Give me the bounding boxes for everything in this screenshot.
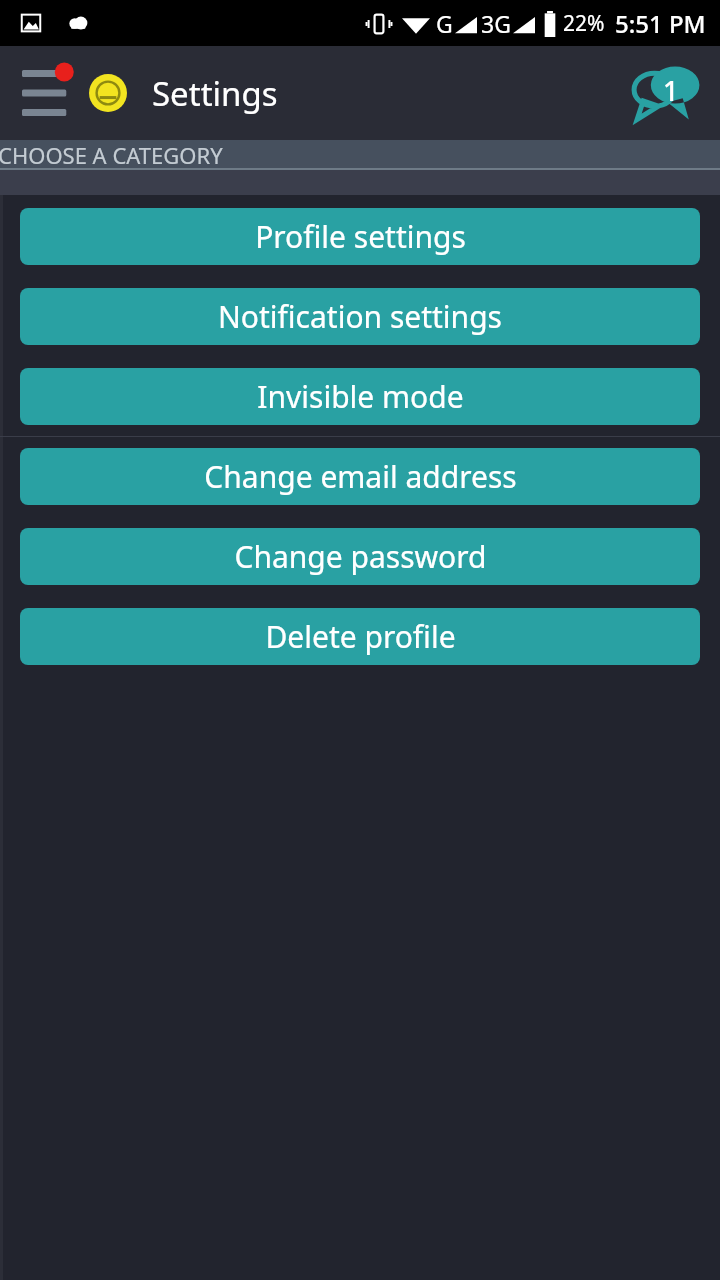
staticText: Settings (152, 71, 278, 116)
staticText: Delete profile (265, 616, 456, 657)
staticText: Notification settings (218, 296, 502, 337)
staticText: 5:51 PM (615, 7, 706, 40)
staticText: CHOOSE A CATEGORY (0, 140, 223, 168)
staticText: Change password (234, 536, 487, 577)
staticText: Change email address (204, 456, 517, 497)
button[interactable]: Invisible mode (20, 368, 700, 425)
staticText: 1 (663, 72, 679, 109)
button[interactable]: Profile avatar (86, 71, 130, 115)
button[interactable]: Delete profile (20, 608, 700, 665)
staticText: 3G (481, 8, 511, 39)
button[interactable]: Change password (20, 528, 700, 585)
button[interactable]: Notification settings (20, 288, 700, 345)
staticText: Invisible mode (257, 376, 464, 417)
button[interactable]: Change email address (20, 448, 700, 505)
button[interactable]: Open navigation menu (18, 63, 80, 123)
staticText: G (436, 8, 453, 39)
staticText: 22% (563, 9, 605, 38)
button[interactable]: Chats, 1 unread (628, 60, 704, 126)
button[interactable]: Profile settings (20, 208, 700, 265)
staticText: Profile settings (255, 216, 466, 257)
